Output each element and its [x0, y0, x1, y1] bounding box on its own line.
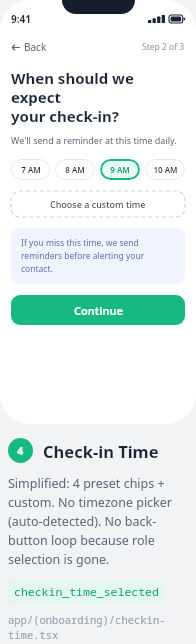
staticText: 7 AM	[21, 164, 41, 175]
staticText: 9:41	[11, 12, 31, 26]
staticText: Back	[24, 40, 47, 54]
button[interactable]: 10 AM	[145, 159, 185, 180]
button[interactable]: 7 AM	[11, 159, 50, 180]
button[interactable]: 8 AM	[55, 159, 95, 180]
staticText: 9 AM	[110, 164, 130, 175]
button[interactable]: Back	[11, 38, 47, 56]
staticText: Simplified: 4 preset chips + custom. No …	[8, 475, 186, 568]
staticText: Step 2 of 3	[142, 41, 185, 53]
staticText: checkin_time_selected	[14, 584, 159, 600]
staticText: 10 AM	[153, 164, 178, 175]
button[interactable]: Choose a custom time	[11, 191, 185, 217]
staticText: Choose a custom time	[50, 198, 146, 210]
staticText: 8 AM	[65, 164, 85, 175]
staticText: If you miss this time, we send reminders…	[21, 237, 175, 275]
staticText: We'll send a reminder at this time daily…	[11, 134, 177, 146]
staticText: Continue	[74, 303, 123, 318]
staticText: When should we expect your check-in?	[11, 68, 185, 126]
button[interactable]: 9 AM	[100, 159, 140, 180]
staticText: Check-in Time	[43, 440, 159, 462]
button[interactable]: Continue	[11, 295, 185, 325]
staticText: app/(onboarding)/checkin- time.tsx	[8, 613, 166, 642]
staticText: 4	[17, 443, 24, 458]
